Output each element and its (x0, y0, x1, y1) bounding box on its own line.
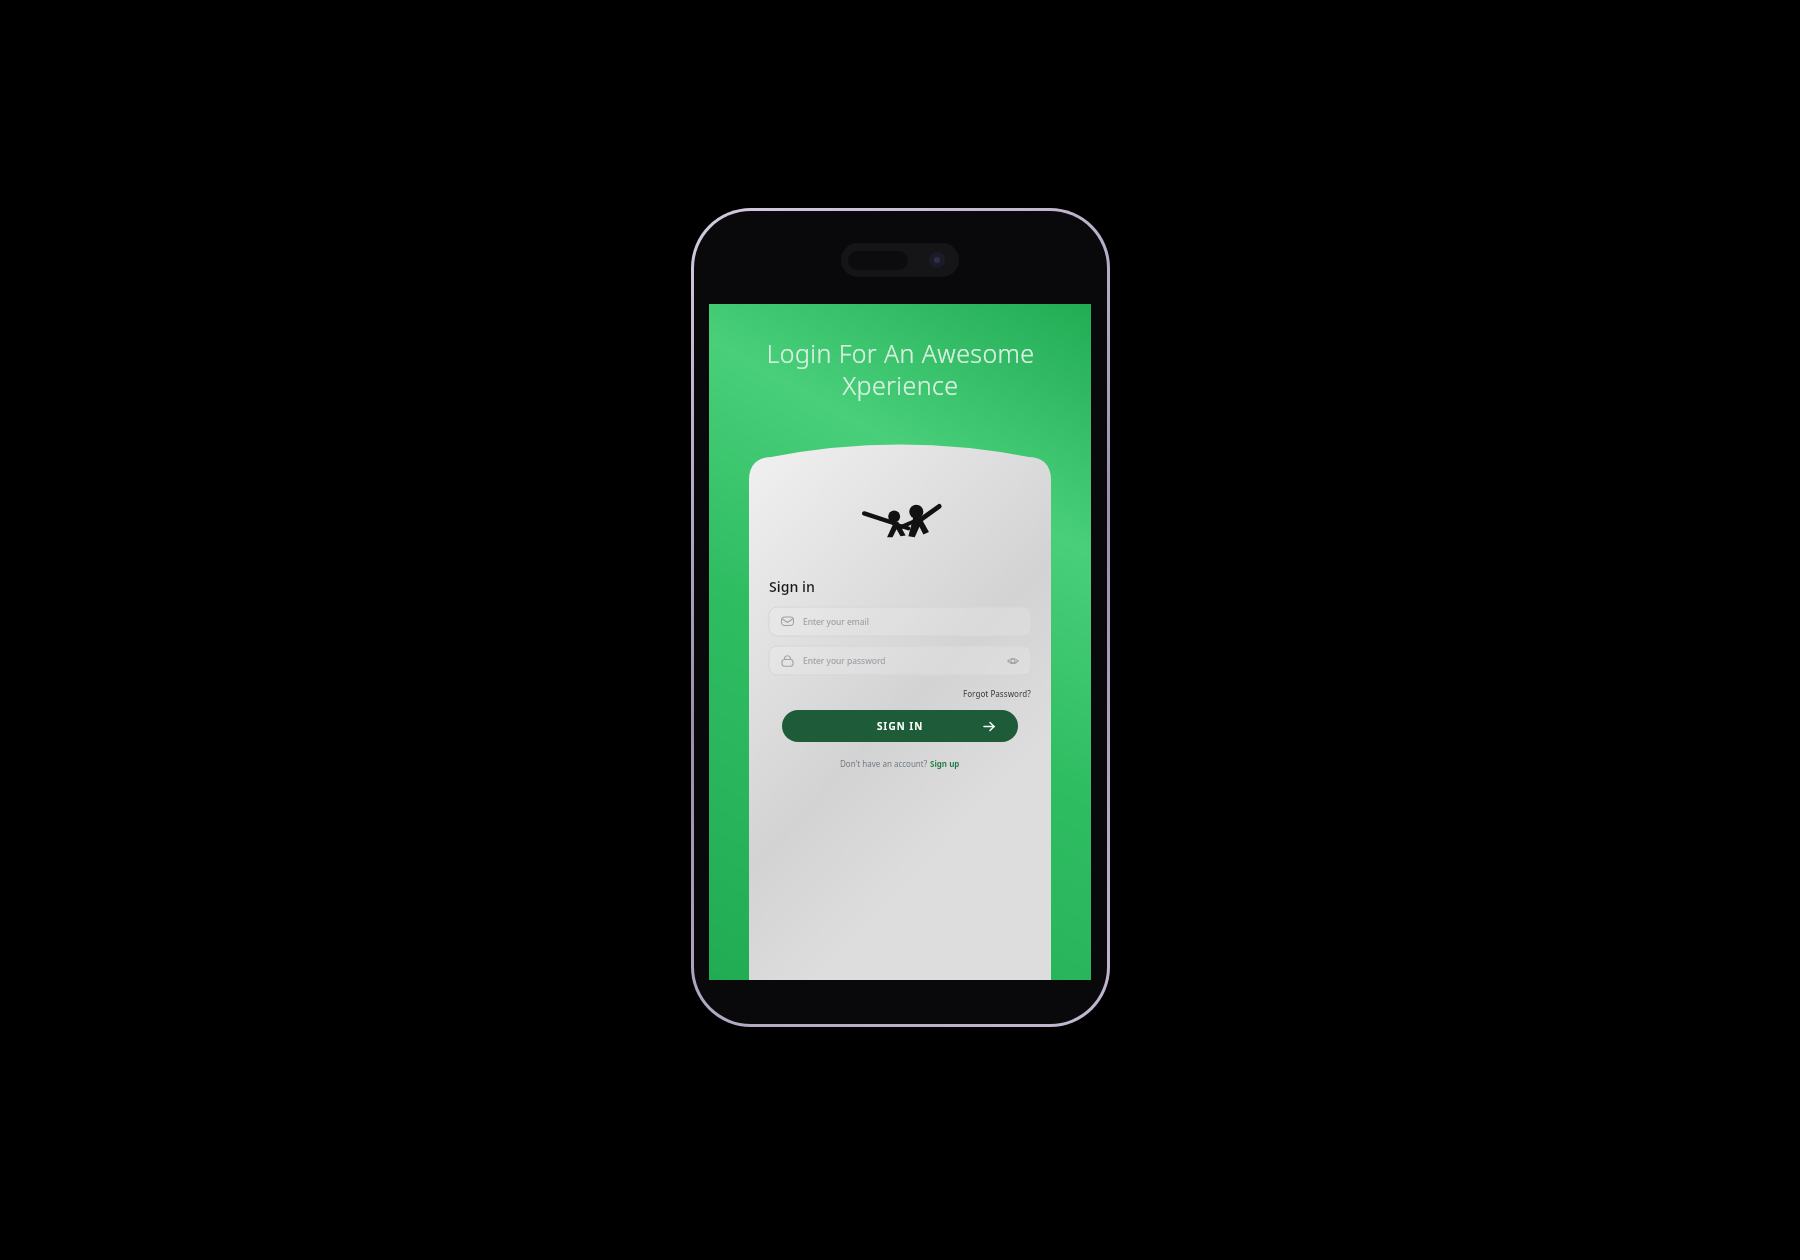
staticText: Don't have an account? (840, 758, 930, 769)
button[interactable]: Sign up (930, 758, 960, 769)
button[interactable]: Enter your email (769, 607, 1031, 636)
staticText: SIGN IN (877, 719, 924, 733)
other: Show password (1007, 655, 1019, 667)
staticText: Login For An Awesome Xperience (766, 336, 1035, 402)
button[interactable]: Forgot Password? (929, 685, 1031, 701)
staticText: Enter your password (803, 655, 886, 667)
staticText: Sign up (930, 758, 960, 769)
staticText: Sign in (769, 577, 815, 596)
button[interactable]: SIGN IN (782, 710, 1018, 742)
staticText: Enter your email (803, 616, 869, 628)
button[interactable]: Enter your password (769, 646, 1031, 675)
staticText: Forgot Password? (963, 688, 1031, 699)
